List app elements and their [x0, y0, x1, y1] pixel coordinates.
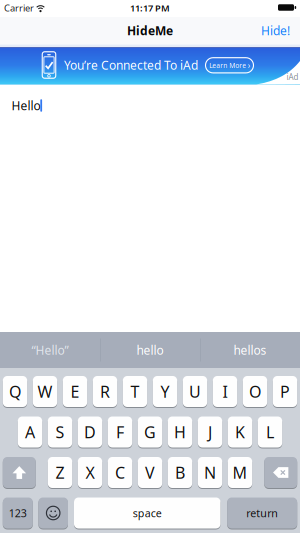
staticText: 11:17 PM [130, 2, 170, 14]
staticText: › [248, 60, 250, 71]
staticText: D [84, 421, 96, 443]
staticText: G [144, 421, 156, 443]
staticText: You’re Connected To iAd [64, 57, 198, 73]
staticText: L [266, 421, 274, 443]
staticText: J [208, 421, 212, 443]
staticText: hellos [233, 342, 266, 358]
staticText: B [175, 462, 185, 483]
staticText: return [246, 506, 278, 520]
staticText: V [145, 462, 155, 483]
staticText: N [204, 462, 216, 483]
staticText: Q [9, 381, 21, 402]
staticText: T [130, 381, 139, 402]
staticText: W [37, 381, 52, 402]
staticText: O [249, 381, 261, 402]
staticText: U [189, 381, 201, 402]
staticText: H [174, 421, 186, 443]
staticText: I [222, 381, 227, 402]
staticText: Z [55, 462, 64, 483]
staticText: P [280, 381, 290, 402]
staticText: hello [136, 342, 163, 358]
staticText: C [115, 462, 125, 483]
staticText: Hello [11, 97, 40, 113]
staticText: “Hello” [31, 342, 68, 358]
staticText: Learn More [209, 61, 246, 70]
staticText: R [100, 381, 110, 402]
staticText: X [85, 462, 94, 483]
staticText: A [25, 421, 35, 443]
staticText: Hide! [261, 22, 290, 38]
staticText: Carrier [4, 2, 34, 14]
staticText: F [116, 421, 124, 443]
staticText: M [232, 462, 247, 483]
staticText: Y [160, 381, 169, 402]
staticText: 123 [9, 506, 27, 520]
staticText: E [70, 381, 79, 402]
staticText: K [235, 421, 245, 443]
staticText: iAd [286, 72, 298, 82]
staticText: S [55, 421, 64, 443]
staticText: HideMe [127, 22, 173, 38]
staticText: space [133, 506, 162, 520]
